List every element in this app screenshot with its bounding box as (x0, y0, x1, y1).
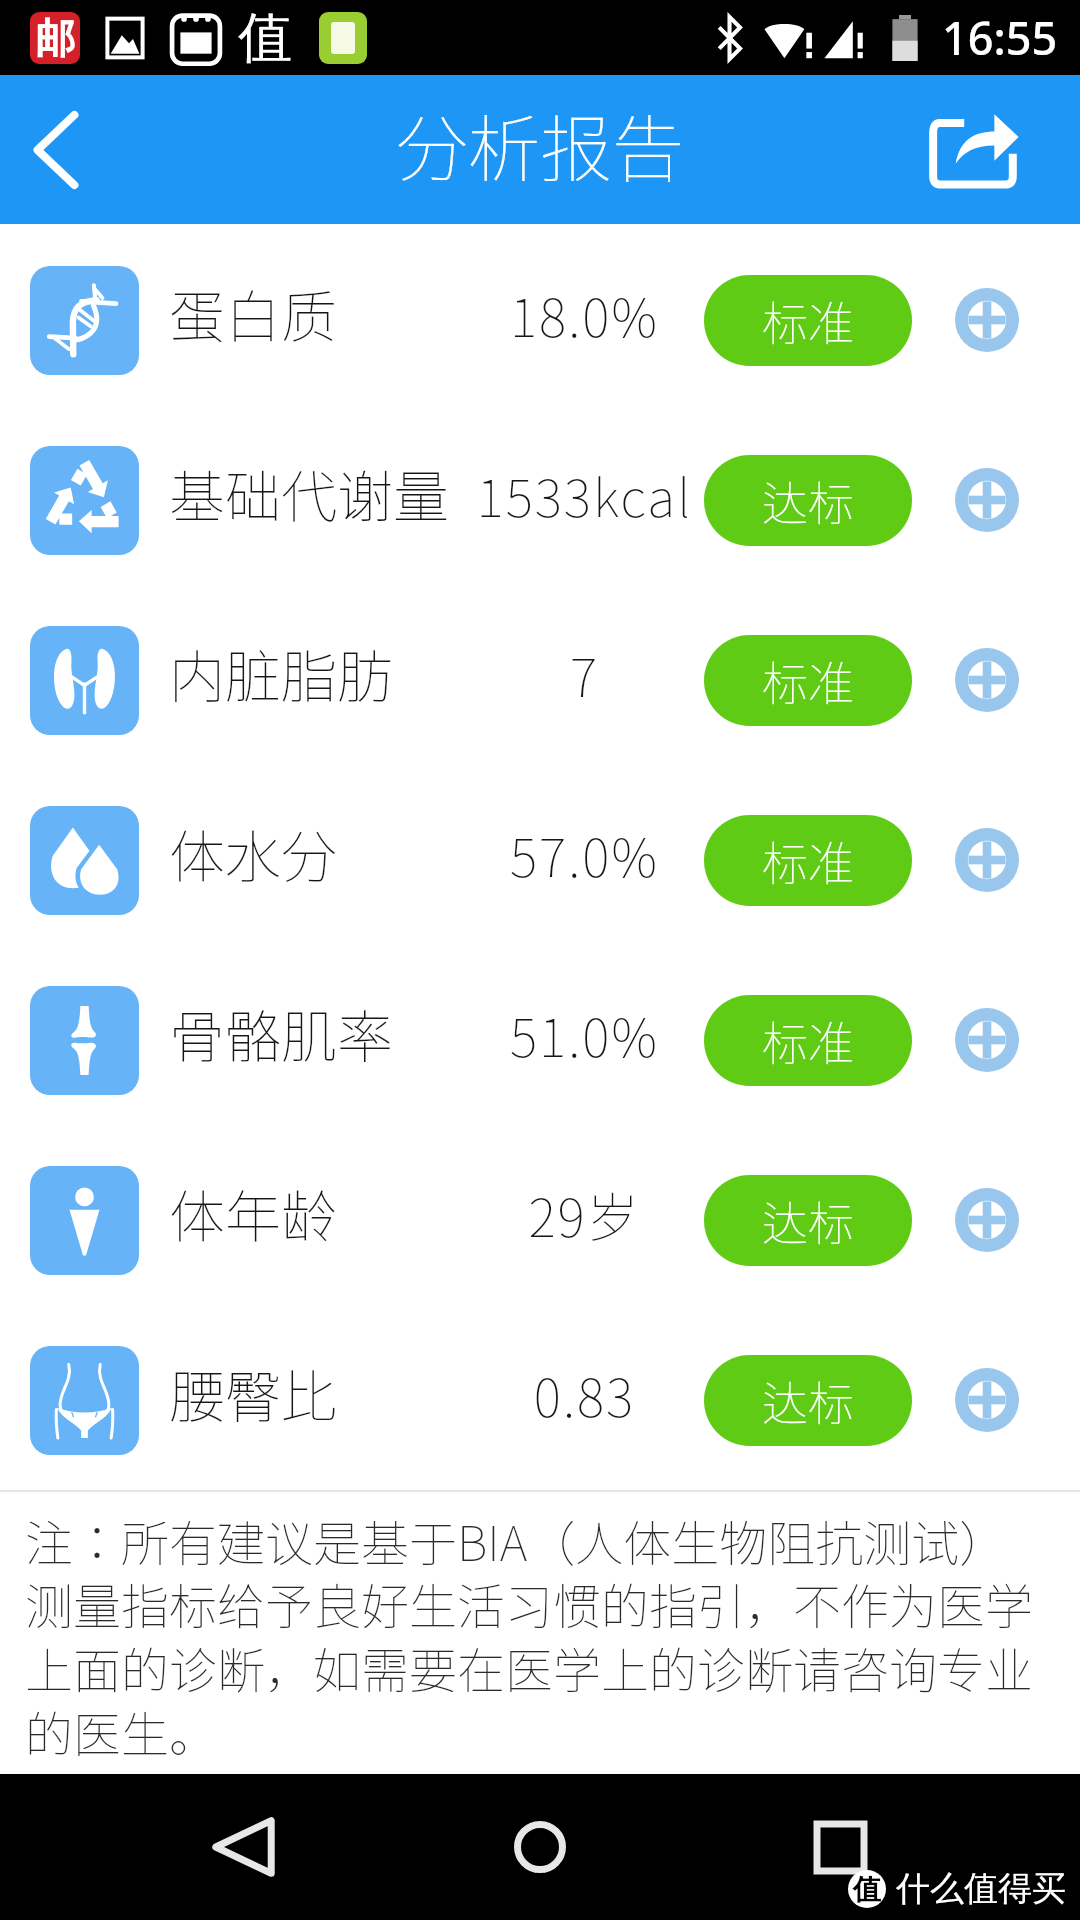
staticText: 标准 (762, 647, 854, 714)
staticText: 内脏脂肪 (169, 632, 465, 713)
staticText: 什么值得买 (896, 1867, 1066, 1910)
staticText: 0.83 (465, 1357, 704, 1432)
button[interactable]: 蛋白质 (0, 230, 1080, 410)
staticText: 值 (238, 4, 292, 72)
button[interactable]: 达标 (704, 1355, 912, 1446)
button[interactable]: Details (955, 1368, 1019, 1432)
button[interactable]: 标准 (704, 815, 912, 906)
button[interactable]: Details (955, 648, 1019, 712)
staticText: 标准 (762, 827, 854, 894)
button[interactable]: 体年龄 (0, 1130, 1080, 1310)
button[interactable]: 基础代谢量 (0, 410, 1080, 590)
button[interactable]: 标准 (704, 635, 912, 726)
staticText: 蛋白质 (169, 272, 465, 353)
staticText: 达标 (762, 1367, 854, 1434)
staticText: 达标 (762, 467, 854, 534)
button[interactable]: 腰臀比 (0, 1310, 1080, 1490)
button[interactable]: 达标 (704, 455, 912, 546)
staticText: 基础代谢量 (169, 452, 465, 533)
button[interactable]: 内脏脂肪 (0, 590, 1080, 770)
staticText: 29岁 (465, 1177, 704, 1252)
staticText: 分析报告 (396, 91, 685, 195)
button[interactable]: Recents (770, 1777, 910, 1917)
staticText: 1533kcal (465, 457, 704, 532)
button[interactable]: Details (955, 288, 1019, 352)
staticText: 达标 (762, 1187, 854, 1254)
staticText: 邮 (35, 13, 75, 63)
button[interactable]: Details (955, 1008, 1019, 1072)
staticText: 51.0% (465, 997, 704, 1072)
button[interactable]: Details (955, 828, 1019, 892)
button[interactable]: Home (470, 1777, 610, 1917)
staticText: 18.0% (465, 277, 704, 352)
staticText: 腰臀比 (169, 1352, 465, 1433)
button[interactable]: Back (6, 100, 106, 200)
button[interactable]: Share (915, 90, 1035, 210)
button[interactable]: 体水分 (0, 770, 1080, 950)
button[interactable]: Back (173, 1777, 313, 1917)
staticText: 体年龄 (169, 1172, 465, 1253)
staticText: 骨骼肌率 (169, 992, 465, 1073)
staticText: 体水分 (169, 812, 465, 893)
button[interactable]: 骨骼肌率 (0, 950, 1080, 1130)
staticText: 7 (465, 637, 704, 712)
button[interactable]: 达标 (704, 1175, 912, 1266)
button[interactable]: Details (955, 468, 1019, 532)
staticText: 注：所有建议是基于BIA（人体生物阻抗测试） 测量指标给予良好生活习惯的指引，不… (25, 1505, 1034, 1766)
staticText: 16:55 (942, 7, 1058, 68)
staticText: 值 (853, 1872, 881, 1907)
button[interactable]: 标准 (704, 275, 912, 366)
button[interactable]: 标准 (704, 995, 912, 1086)
button[interactable]: Details (955, 1188, 1019, 1252)
staticText: 标准 (762, 287, 854, 354)
staticText: 57.0% (465, 817, 704, 892)
staticText: 标准 (762, 1007, 854, 1074)
